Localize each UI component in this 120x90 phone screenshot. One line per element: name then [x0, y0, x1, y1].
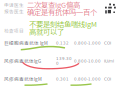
button[interactable]: 风疹病毒抗体IgM — [4, 76, 118, 82]
staticText: 确定是有抗体吗一百个 — [27, 6, 97, 17]
staticText: 巨细胞病毒抗体 IgM — [4, 40, 48, 46]
staticText: 检查项目 — [4, 27, 24, 34]
staticText: 申请医生 — [4, 2, 24, 8]
staticText: 0.800-1.000 — [74, 77, 101, 81]
staticText: 高就可以了 — [29, 26, 64, 37]
staticText: 二次复查IgG偏高 — [27, 0, 80, 10]
staticText: 0.800-10.00 — [74, 59, 101, 63]
staticText: 报告医生 — [4, 8, 24, 15]
staticText: IU/ml — [104, 59, 114, 63]
staticText: 风疹病毒抗体IgG — [4, 58, 41, 64]
button[interactable]: 风疹病毒抗体IgG — [4, 58, 118, 64]
staticText: 0.301 — [56, 77, 69, 81]
staticText: 0.132 — [56, 41, 69, 45]
staticText: 0.800-1.000 — [74, 41, 101, 45]
staticText: COI — [104, 41, 111, 45]
staticText: 风疹病毒抗体IgM — [4, 76, 42, 82]
staticText: 139.300 — [56, 56, 72, 66]
staticText: COI — [104, 77, 111, 81]
staticText: 不要是刻结鱼喘线IgM — [29, 18, 97, 29]
button[interactable]: 巨细胞病毒抗体 IgM — [4, 40, 118, 46]
